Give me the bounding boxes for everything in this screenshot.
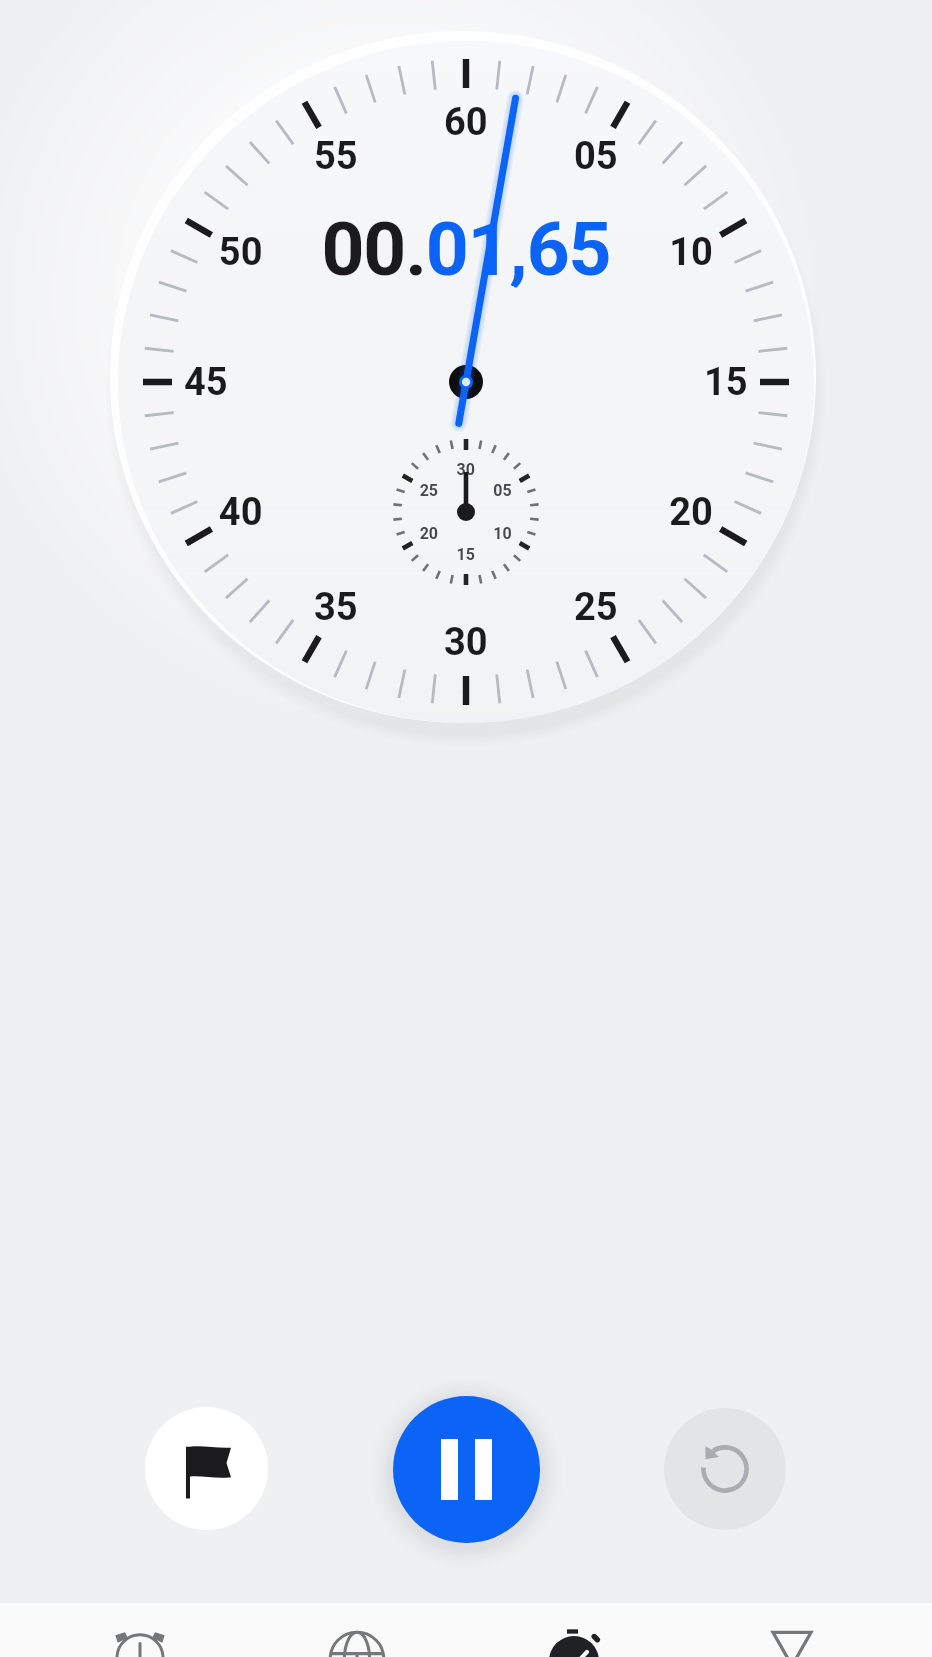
button[interactable]: Alarm xyxy=(31,1603,248,1657)
button[interactable]: Lap xyxy=(145,1407,268,1530)
button[interactable]: Timer xyxy=(683,1603,901,1657)
button[interactable]: Stopwatch xyxy=(465,1603,683,1657)
button[interactable]: World clock xyxy=(248,1603,465,1657)
button[interactable]: Pause xyxy=(393,1396,540,1543)
button[interactable]: Reset xyxy=(664,1408,786,1530)
